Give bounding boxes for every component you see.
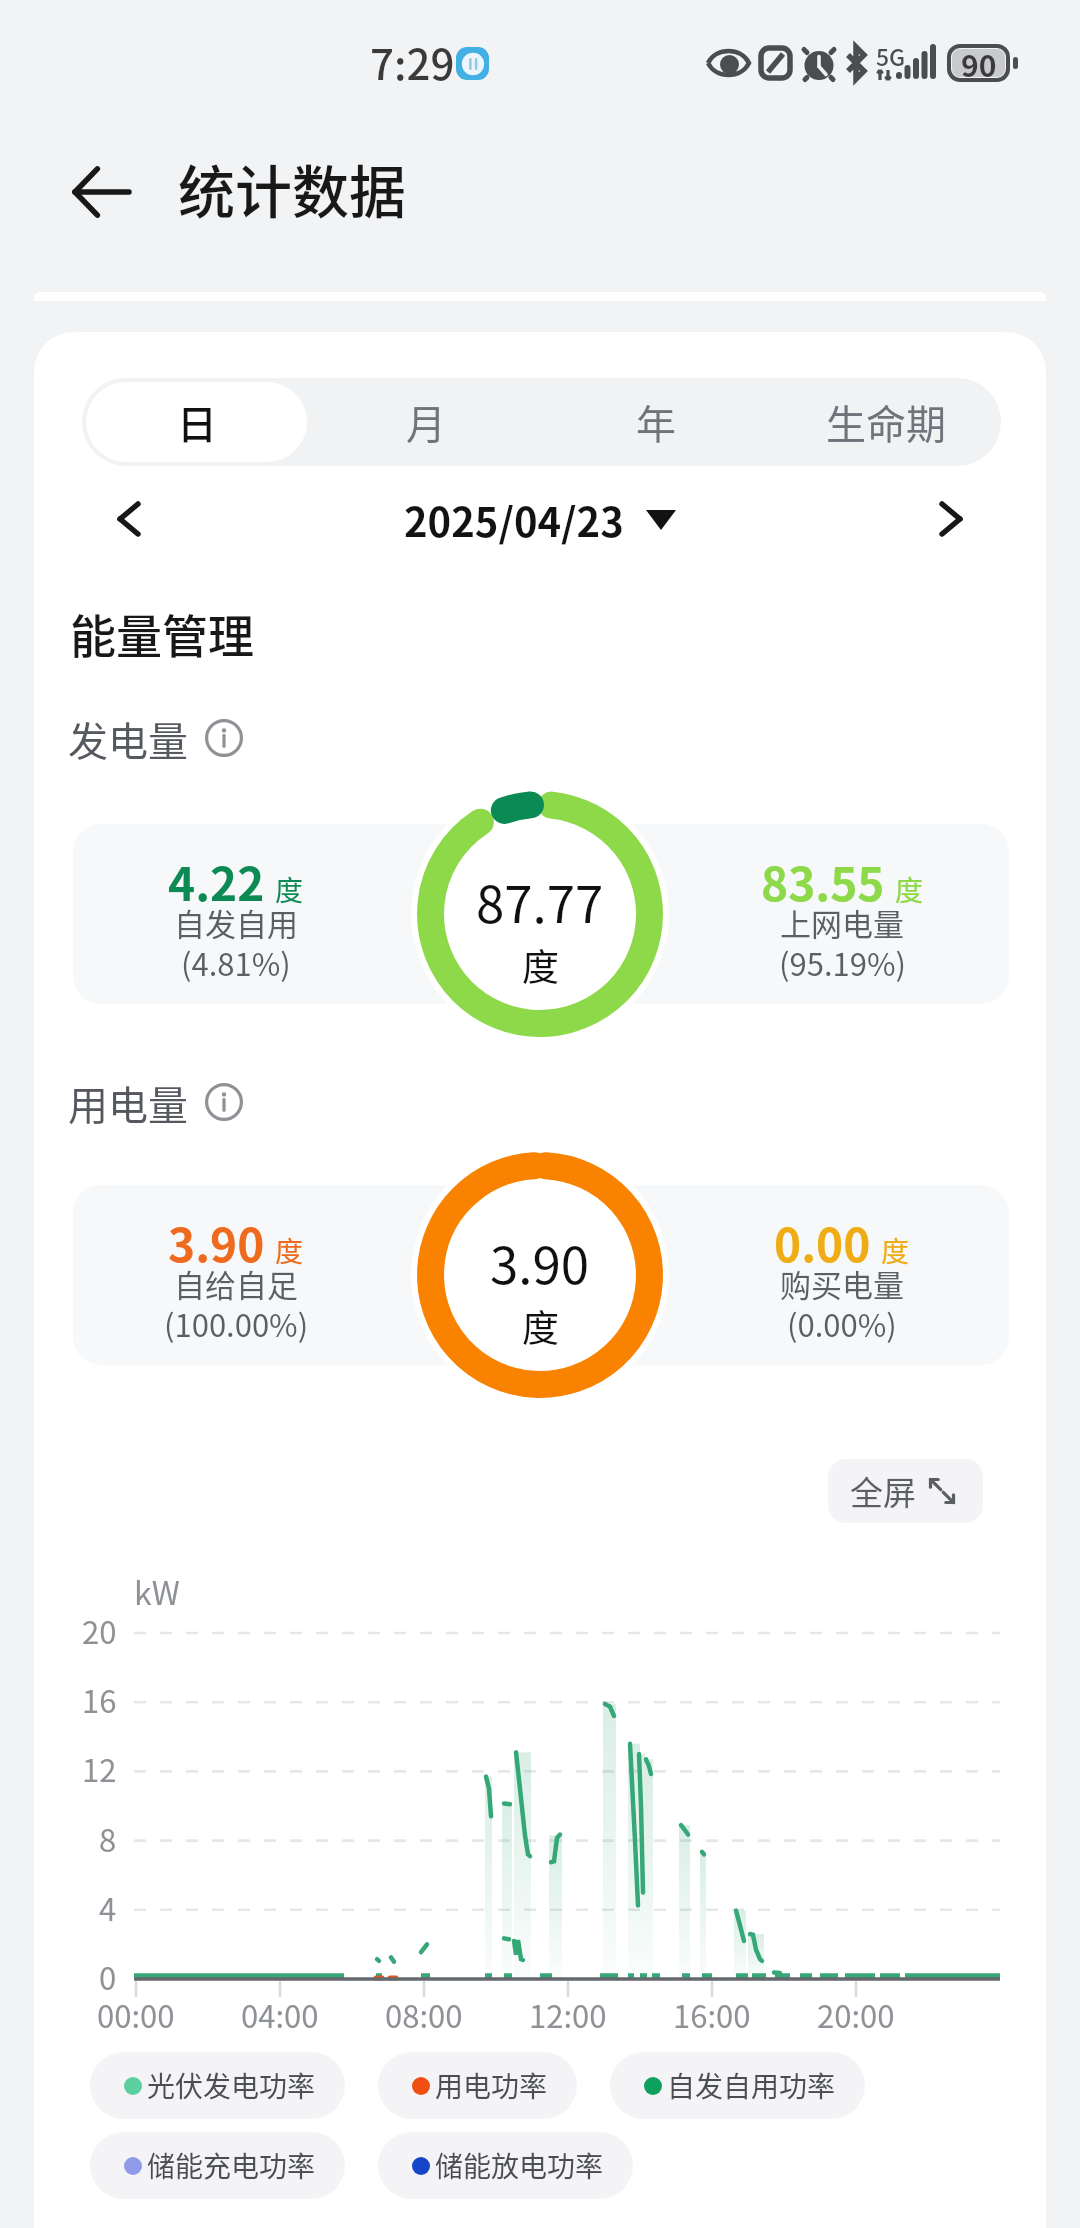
button[interactable]: 光伏发电功率 xyxy=(90,2052,345,2119)
staticText: 自发自用 xyxy=(174,900,298,945)
staticText: 用电功率 xyxy=(435,2065,548,2106)
staticText: 度 xyxy=(895,869,924,910)
button[interactable]: Back xyxy=(57,147,147,237)
staticText: 12 xyxy=(82,1746,117,1790)
staticText: 自给自足 xyxy=(174,1261,298,1306)
staticText: 月 xyxy=(406,393,446,451)
button[interactable]: Consumption info xyxy=(202,1080,246,1124)
staticText: 08:00 xyxy=(385,1992,463,2037)
staticText: 87.77 xyxy=(476,864,604,938)
staticText: 04:00 xyxy=(241,1992,319,2037)
button[interactable]: 全屏 xyxy=(828,1459,983,1523)
staticText: 发电量 xyxy=(68,710,188,766)
staticText: 度 xyxy=(522,1299,559,1353)
staticText: 购买电量 xyxy=(780,1261,904,1306)
staticText: 用电量 xyxy=(68,1074,188,1130)
staticText: 4 xyxy=(99,1885,117,1929)
staticText: (100.00%) xyxy=(164,1301,309,1346)
staticText: 能量管理 xyxy=(70,600,254,667)
staticText: 度 xyxy=(881,1230,910,1271)
staticText: 83.55 xyxy=(761,848,885,915)
staticText: 16 xyxy=(82,1677,117,1721)
staticText: 7:29 xyxy=(370,31,455,92)
staticText: 12:00 xyxy=(529,1992,607,2037)
staticText: 上网电量 xyxy=(780,900,904,945)
staticText: 日 xyxy=(177,393,217,451)
staticText: 度 xyxy=(522,938,559,992)
staticText: 8 xyxy=(99,1816,117,1860)
staticText: 4.22 xyxy=(168,848,265,915)
staticText: (95.19%) xyxy=(779,940,906,985)
button[interactable]: 储能充电功率 xyxy=(90,2132,345,2199)
staticText: 光伏发电功率 xyxy=(147,2065,316,2106)
staticText: (0.00%) xyxy=(787,1301,897,1346)
button[interactable]: Next day xyxy=(919,487,983,551)
staticText: 20:00 xyxy=(817,1992,895,2037)
staticText: 自发自用功率 xyxy=(667,2065,836,2106)
button[interactable]: 日 xyxy=(86,382,307,462)
staticText: 5G xyxy=(876,39,906,72)
staticText: 0.00 xyxy=(774,1209,871,1276)
staticText: 度 xyxy=(275,869,304,910)
button[interactable]: 生命期 xyxy=(775,382,997,462)
staticText: 年 xyxy=(636,393,676,451)
staticText: 度 xyxy=(275,1230,304,1271)
button[interactable]: 储能放电功率 xyxy=(378,2132,633,2199)
staticText: 2025/04/23 xyxy=(404,491,624,547)
button[interactable]: 月 xyxy=(315,382,537,462)
staticText: 储能放电功率 xyxy=(435,2145,604,2186)
button[interactable]: 2025/04/23 xyxy=(392,485,688,553)
staticText: 3.90 xyxy=(490,1225,590,1299)
button[interactable]: Generation info xyxy=(202,716,246,760)
staticText: 3.90 xyxy=(168,1209,265,1276)
staticText: 16:00 xyxy=(673,1992,751,2037)
button[interactable]: 年 xyxy=(545,382,767,462)
staticText: 00:00 xyxy=(97,1992,175,2037)
button[interactable]: 自发自用功率 xyxy=(610,2052,865,2119)
staticText: 0 xyxy=(99,1954,117,1998)
staticText: 20 xyxy=(82,1608,117,1652)
staticText: 全屏 xyxy=(850,1467,916,1515)
staticText: (4.81%) xyxy=(181,940,291,985)
staticText: 90 xyxy=(961,42,997,85)
staticText: 生命期 xyxy=(826,393,946,451)
staticText: 储能充电功率 xyxy=(147,2145,316,2186)
staticText: kW xyxy=(134,1568,180,1614)
button[interactable]: Previous day xyxy=(97,487,161,551)
staticText: 统计数据 xyxy=(178,147,406,230)
button[interactable]: 用电功率 xyxy=(378,2052,577,2119)
